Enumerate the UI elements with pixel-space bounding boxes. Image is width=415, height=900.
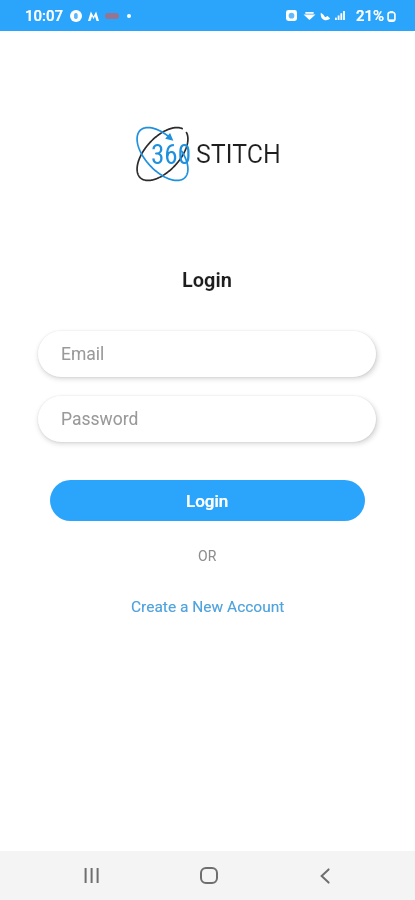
staticText: 360 xyxy=(151,139,191,171)
button[interactable]: Home xyxy=(175,851,242,900)
staticText: Password xyxy=(61,409,139,430)
staticText: 10:07 xyxy=(25,7,64,25)
staticText: Create a New Account xyxy=(131,598,285,616)
button[interactable]: Recent apps xyxy=(58,851,125,900)
button[interactable]: Password xyxy=(38,396,376,442)
button[interactable]: Email xyxy=(38,331,376,377)
button[interactable]: Login xyxy=(50,480,365,521)
button[interactable]: Create a New Account xyxy=(117,593,299,621)
staticText: Login xyxy=(186,491,229,511)
staticText: 21% xyxy=(356,7,385,25)
button[interactable]: Back xyxy=(291,851,358,900)
staticText: OR xyxy=(198,548,217,564)
staticText: STITCH xyxy=(196,140,281,169)
staticText: Login xyxy=(182,268,233,291)
staticText: Email xyxy=(61,344,105,365)
